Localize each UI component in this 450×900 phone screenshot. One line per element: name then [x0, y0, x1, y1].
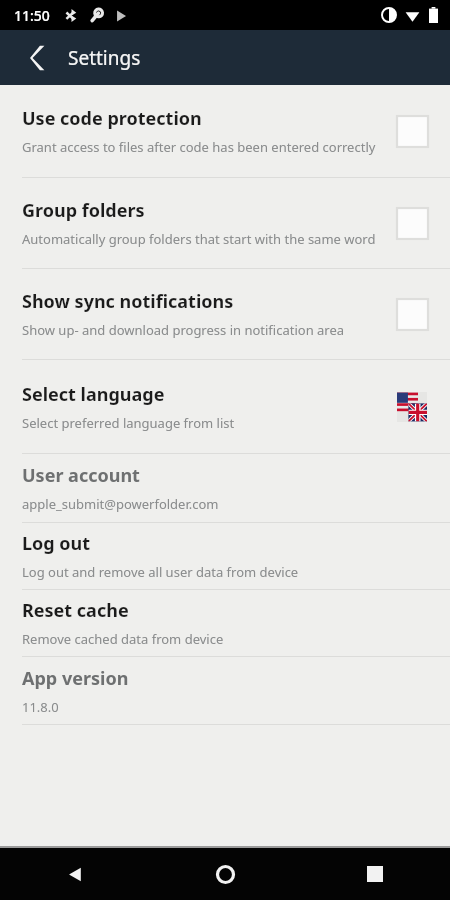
staticText: Select preferred language from list	[22, 414, 235, 432]
staticText: Settings	[68, 45, 141, 71]
staticText: Remove cached data from device	[22, 630, 224, 648]
staticText: User account	[22, 463, 140, 488]
staticText: Show sync notifications	[22, 289, 234, 314]
staticText: 11:50	[14, 6, 50, 25]
button[interactable]: Use code protection	[0, 85, 450, 177]
staticText: Show up- and download progress in notifi…	[22, 321, 345, 339]
staticText: Grant access to files after code has bee…	[22, 138, 376, 156]
button[interactable]: Home	[150, 848, 300, 900]
staticText: Log out	[22, 531, 91, 556]
button[interactable]: Log out	[0, 523, 450, 589]
staticText: Group folders	[22, 198, 145, 223]
button[interactable]: Group folders	[0, 178, 450, 268]
staticText: App version	[22, 666, 129, 691]
button[interactable]: User account	[0, 454, 450, 522]
button[interactable]: Back	[16, 36, 60, 80]
staticText: Select language	[22, 382, 165, 407]
button[interactable]: Recent apps	[300, 848, 450, 900]
staticText: 11.8.0	[22, 698, 59, 716]
staticText: apple_submit@powerfolder.com	[22, 495, 219, 513]
staticText: Log out and remove all user data from de…	[22, 563, 299, 581]
button[interactable]: App version	[0, 657, 450, 724]
button[interactable]: Select language	[0, 360, 450, 453]
button[interactable]: Show sync notifications	[0, 269, 450, 359]
staticText: Automatically group folders that start w…	[22, 230, 376, 248]
button[interactable]: Back	[0, 848, 150, 900]
button[interactable]: Reset cache	[0, 590, 450, 656]
staticText: Reset cache	[22, 598, 129, 623]
staticText: Use code protection	[22, 106, 202, 131]
